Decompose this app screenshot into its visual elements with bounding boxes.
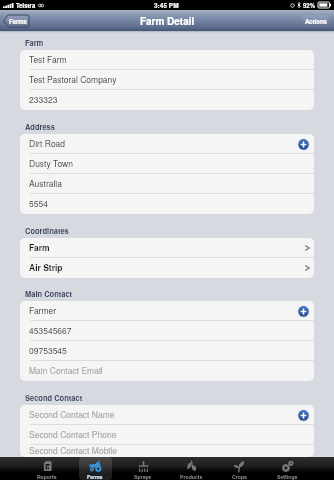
staticText: Farm <box>25 38 44 49</box>
staticText: 5554 <box>29 197 48 209</box>
button[interactable]: Second Contact Name <box>20 405 314 425</box>
staticText: Sprays <box>134 473 152 480</box>
button[interactable]: Farms <box>71 457 119 480</box>
staticText: Farmer <box>29 304 57 316</box>
staticText: 09753545 <box>29 344 67 356</box>
staticText: Test Pastoral Company <box>29 73 117 85</box>
button[interactable]: Settings <box>263 457 311 480</box>
button[interactable]: Test Pastoral Company <box>20 70 314 90</box>
staticText: Farms <box>9 17 27 26</box>
other: Add <box>297 138 310 151</box>
staticText: Second Contact Phone <box>29 428 117 440</box>
button[interactable]: Second Contact Mobile <box>20 445 314 457</box>
staticText: Second Contact <box>25 393 83 404</box>
staticText: 92% <box>303 1 316 10</box>
staticText: Coordinates <box>25 226 69 237</box>
other: Add <box>297 305 310 318</box>
button[interactable]: Actions <box>302 15 329 27</box>
staticText: Second Contact Mobile <box>29 444 117 456</box>
button[interactable]: 233323 <box>20 90 314 110</box>
staticText: Farm <box>29 241 50 253</box>
staticText: Reports <box>37 473 57 480</box>
staticText: Telstra <box>16 1 36 10</box>
button[interactable]: Sprays <box>119 457 167 480</box>
other: Add <box>297 409 310 422</box>
staticText: Dirt Road <box>29 137 66 149</box>
staticText: Dusty Town <box>29 157 73 169</box>
button[interactable]: Farm <box>20 238 314 258</box>
staticText: Second Contact Name <box>29 408 115 420</box>
button[interactable]: Test Farm <box>20 50 314 70</box>
button[interactable]: Main Contact Email <box>20 361 314 381</box>
staticText: Air Strip <box>29 261 63 273</box>
staticText: Address <box>25 122 55 133</box>
button[interactable]: Farms <box>3 15 29 27</box>
staticText: Australia <box>29 177 62 189</box>
button[interactable]: 5554 <box>20 194 314 214</box>
button[interactable]: Crops <box>215 457 263 480</box>
staticText: 3:45 PM <box>154 1 179 10</box>
staticText: Test Farm <box>29 53 67 65</box>
other: Open <box>305 264 310 272</box>
staticText: Farms <box>87 473 103 480</box>
staticText: Main Contact <box>25 289 73 300</box>
button[interactable]: 453545667 <box>20 321 314 341</box>
button[interactable]: 09753545 <box>20 341 314 361</box>
button[interactable]: Products <box>167 457 215 480</box>
button[interactable]: Australia <box>20 174 314 194</box>
staticText: Products <box>180 473 203 480</box>
staticText: 453545667 <box>29 324 72 336</box>
staticText: 233323 <box>29 93 58 105</box>
button[interactable]: Air Strip <box>20 258 314 278</box>
other: Open <box>305 244 310 252</box>
button[interactable]: Farmer <box>20 301 314 321</box>
staticText: Crops <box>232 473 247 480</box>
staticText: Settings <box>277 473 298 480</box>
button[interactable]: Dirt Road <box>20 134 314 154</box>
staticText: Main Contact Email <box>29 364 103 376</box>
staticText: Actions <box>305 17 327 26</box>
button[interactable]: Dusty Town <box>20 154 314 174</box>
staticText: Farm Detail <box>140 14 195 28</box>
button[interactable]: Reports <box>23 457 71 480</box>
button[interactable]: Second Contact Phone <box>20 425 314 445</box>
